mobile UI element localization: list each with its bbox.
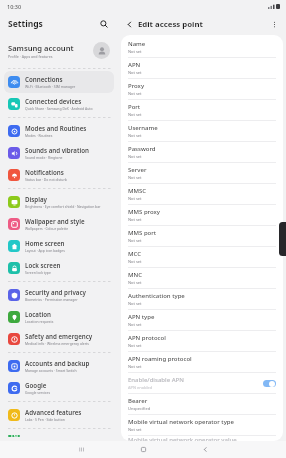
staticText: Mobile virtual network operator type [128, 418, 234, 426]
button[interactable]: Edge panel handle [279, 222, 286, 256]
button[interactable]: Home screen [4, 235, 114, 257]
button[interactable]: Name [121, 37, 283, 57]
staticText: Edit access point [138, 19, 203, 30]
button[interactable]: Authentication type [121, 289, 283, 309]
button[interactable]: Username [121, 121, 283, 141]
staticText: MNC [128, 271, 142, 279]
staticText: Not set [128, 280, 142, 285]
button[interactable]: Digital Wellbeing and parental controls [4, 431, 114, 441]
staticText: Enable/disable APN [128, 376, 184, 384]
staticText: Not set [128, 343, 142, 348]
staticText: Wi-Fi · Bluetooth · SIM manager [25, 84, 76, 89]
staticText: Advanced features [25, 408, 82, 416]
staticText: Google services [25, 390, 51, 395]
button[interactable]: Lock screen [4, 257, 114, 279]
button[interactable]: Security and privacy [4, 284, 114, 306]
button[interactable]: MMS port [121, 226, 283, 246]
button[interactable]: Search [97, 17, 111, 31]
button[interactable]: Sounds and vibration [4, 142, 114, 164]
staticText: Settings [8, 18, 43, 30]
button[interactable]: Connected devices [4, 93, 114, 115]
button[interactable]: Back [123, 18, 136, 31]
staticText: Profile · Apps and features [8, 54, 53, 59]
button[interactable]: Proxy [121, 79, 283, 99]
button[interactable]: Bearer [121, 394, 283, 414]
staticText: APN roaming protocol [128, 355, 192, 363]
button[interactable]: Display [4, 191, 114, 213]
staticText: Notifications [25, 168, 64, 176]
button[interactable]: Port [121, 100, 283, 120]
button[interactable]: APN [121, 58, 283, 78]
button[interactable]: Notifications [4, 164, 114, 186]
staticText: Modes · Routines [25, 133, 53, 138]
staticText: Not set [128, 238, 142, 243]
button[interactable]: Advanced features [4, 404, 114, 426]
staticText: Connected devices [25, 97, 82, 105]
button[interactable]: More options [268, 18, 281, 31]
button[interactable]: Mobile virtual network operator type [121, 415, 283, 435]
button[interactable]: MMSC [121, 184, 283, 204]
staticText: Password [128, 145, 156, 153]
staticText: Not set [128, 112, 142, 117]
staticText: Screen lock type [25, 270, 51, 275]
button[interactable]: MMS proxy [121, 205, 283, 225]
button[interactable] [263, 380, 276, 387]
staticText: Security and privacy [25, 288, 86, 296]
staticText: Not set [128, 322, 142, 327]
staticText: Manage accounts · Smart Switch [25, 368, 77, 373]
button[interactable]: Recents [74, 442, 89, 457]
button[interactable]: APN protocol [121, 331, 283, 351]
button[interactable]: MNC [121, 268, 283, 288]
staticText: Wallpapers · Colour palette [25, 226, 69, 231]
staticText: MMSC [128, 187, 147, 195]
staticText: Not set [128, 91, 142, 96]
button[interactable]: Google [4, 377, 114, 399]
staticText: Brightness · Eye comfort shield · Naviga… [25, 204, 101, 209]
button[interactable]: APN type [121, 310, 283, 330]
staticText: MMS proxy [128, 208, 160, 216]
button[interactable]: Back [198, 442, 213, 457]
staticText: Accounts and backup [25, 359, 90, 367]
staticText: Authentication type [128, 292, 185, 300]
staticText: Not set [128, 154, 142, 159]
staticText: Mobile virtual network operator value [128, 436, 237, 441]
staticText: Lock screen [25, 261, 61, 269]
staticText: Status bar · Do not disturb [25, 177, 67, 182]
staticText: Server [128, 166, 147, 174]
staticText: Name [128, 40, 146, 48]
staticText: Not set [128, 259, 142, 264]
staticText: Not set [128, 217, 142, 222]
button[interactable]: Password [121, 142, 283, 162]
button[interactable]: Mobile virtual network operator value [121, 436, 283, 441]
button[interactable]: Samsung account [0, 35, 118, 66]
staticText: Medical info · Wireless emergency alerts [25, 341, 89, 346]
button[interactable]: MCC [121, 247, 283, 267]
button[interactable]: Server [121, 163, 283, 183]
staticText: Not set [128, 175, 142, 180]
staticText: Samsung account [8, 43, 74, 53]
button[interactable]: Enable/disable APN [121, 373, 283, 393]
staticText: Username [128, 124, 158, 132]
staticText: Wallpaper and style [25, 217, 85, 225]
button[interactable]: Wallpaper and style [4, 213, 114, 235]
staticText: Safety and emergency [25, 332, 93, 340]
staticText: Not set [128, 70, 142, 75]
button[interactable]: Home [136, 442, 151, 457]
button[interactable]: Connections [4, 71, 114, 93]
button[interactable]: Location [4, 306, 114, 328]
staticText: Not set [128, 196, 142, 201]
staticText: APN protocol [128, 334, 166, 342]
button[interactable]: Accounts and backup [4, 355, 114, 377]
staticText: Sound mode · Ringtone [25, 155, 63, 160]
staticText: Modes and Routines [25, 124, 87, 132]
staticText: Port [128, 103, 141, 111]
staticText: Connections [25, 75, 63, 83]
staticText: APN type [128, 313, 155, 321]
button[interactable]: Modes and Routines [4, 120, 114, 142]
staticText: Biometrics · Permission manager [25, 297, 78, 302]
staticText: Google [25, 381, 47, 389]
staticText: Location [25, 310, 51, 318]
staticText: Display [25, 195, 47, 203]
button[interactable]: APN roaming protocol [121, 352, 283, 372]
button[interactable]: Safety and emergency [4, 328, 114, 350]
